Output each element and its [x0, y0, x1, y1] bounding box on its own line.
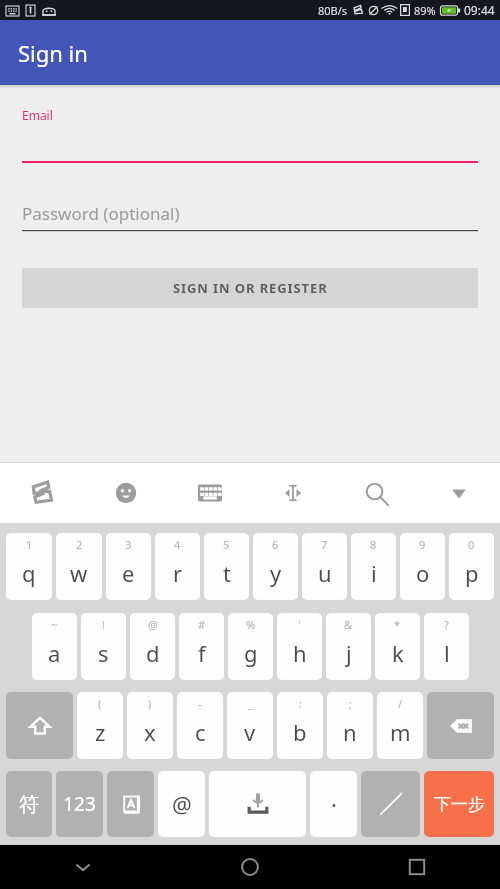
button[interactable]: Chinese English toggle: [361, 771, 420, 837]
button[interactable]: *: [375, 613, 420, 680]
staticText: o: [416, 558, 430, 588]
button[interactable]: More: [417, 463, 500, 523]
button[interactable]: #: [179, 613, 224, 680]
button[interactable]: Home: [166, 845, 333, 889]
staticText: 下一步: [434, 794, 485, 815]
staticText: 80B/s: [318, 3, 348, 18]
button[interactable]: _: [227, 692, 273, 759]
button[interactable]: 符: [6, 771, 52, 837]
button[interactable]: 4: [155, 533, 200, 600]
button[interactable]: 2: [56, 533, 102, 600]
staticText: /: [398, 696, 403, 711]
staticText: i: [371, 558, 377, 588]
staticText: Password (optional): [22, 202, 180, 225]
staticText: 1: [26, 537, 33, 552]
staticText: 7: [321, 537, 328, 552]
staticText: v: [244, 717, 256, 747]
staticText: @: [172, 789, 192, 819]
button[interactable]: Move cursor: [251, 463, 334, 523]
staticText: !: [102, 617, 105, 632]
button[interactable]: ': [277, 613, 322, 680]
staticText: 09:44: [464, 2, 495, 18]
staticText: 9: [419, 537, 426, 552]
staticText: 8: [370, 537, 377, 552]
button[interactable]: SIGN IN OR REGISTER: [22, 268, 478, 308]
button[interactable]: Email: [22, 107, 478, 163]
staticText: z: [95, 717, 106, 747]
staticText: _: [248, 696, 253, 711]
button[interactable]: Sogou input: [0, 463, 84, 523]
button[interactable]: %: [228, 613, 273, 680]
button[interactable]: 9: [400, 533, 445, 600]
button[interactable]: ?: [424, 613, 469, 680]
button[interactable]: 下一步: [424, 771, 494, 837]
staticText: j: [346, 638, 352, 668]
button[interactable]: (: [77, 692, 123, 759]
staticText: a: [48, 638, 61, 668]
button[interactable]: Password (optional): [22, 191, 478, 231]
button[interactable]: 8: [351, 533, 396, 600]
button[interactable]: 1: [6, 533, 52, 600]
staticText: f: [198, 638, 206, 668]
button[interactable]: ;: [327, 692, 373, 759]
button[interactable]: @: [130, 613, 175, 680]
staticText: -: [198, 696, 202, 711]
staticText: e: [122, 558, 135, 588]
button[interactable]: Emoji: [84, 463, 168, 523]
staticText: n: [343, 717, 357, 747]
staticText: k: [392, 638, 404, 668]
staticText: Sign in: [18, 38, 88, 68]
button[interactable]: Shift: [6, 692, 73, 759]
staticText: Email: [22, 107, 53, 123]
staticText: &: [344, 617, 353, 632]
button[interactable]: Keyboard layout: [168, 463, 251, 523]
button[interactable]: 0: [449, 533, 494, 600]
button[interactable]: ): [127, 692, 173, 759]
staticText: %: [246, 617, 256, 632]
staticText: y: [270, 558, 282, 588]
staticText: ·: [331, 789, 337, 819]
staticText: h: [293, 638, 307, 668]
staticText: 0: [468, 537, 475, 552]
button[interactable]: &: [326, 613, 371, 680]
staticText: ): [148, 696, 152, 711]
button[interactable]: !: [81, 613, 126, 680]
staticText: (: [98, 696, 102, 711]
button[interactable]: Backspace: [427, 692, 494, 759]
staticText: *: [394, 617, 401, 632]
button[interactable]: ·: [310, 771, 357, 837]
staticText: l: [444, 638, 450, 668]
staticText: ?: [444, 617, 449, 632]
button[interactable]: :: [277, 692, 323, 759]
staticText: 6: [272, 537, 279, 552]
button[interactable]: Back: [0, 845, 166, 889]
staticText: p: [465, 558, 479, 588]
button[interactable]: 7: [302, 533, 347, 600]
button[interactable]: Search: [334, 463, 417, 523]
staticText: x: [144, 717, 156, 747]
staticText: s: [98, 638, 109, 668]
button[interactable]: 123: [56, 771, 103, 837]
staticText: 2: [76, 537, 83, 552]
button[interactable]: Sign in: [0, 20, 500, 85]
button[interactable]: Input language: [107, 771, 154, 837]
button[interactable]: 6: [253, 533, 298, 600]
button[interactable]: -: [177, 692, 223, 759]
staticText: q: [22, 558, 36, 588]
staticText: SIGN IN OR REGISTER: [173, 279, 328, 297]
staticText: g: [244, 638, 258, 668]
staticText: u: [318, 558, 332, 588]
button[interactable]: @: [158, 771, 205, 837]
button[interactable]: ~: [32, 613, 77, 680]
button[interactable]: /: [377, 692, 423, 759]
button[interactable]: 3: [106, 533, 151, 600]
button[interactable]: 5: [204, 533, 249, 600]
button[interactable]: Space: [209, 771, 306, 837]
staticText: 3: [125, 537, 132, 552]
staticText: ~: [51, 617, 58, 632]
staticText: 123: [63, 791, 96, 817]
staticText: m: [390, 717, 411, 747]
staticText: w: [70, 558, 88, 588]
staticText: 89%: [414, 3, 436, 18]
button[interactable]: Recents: [333, 845, 500, 889]
